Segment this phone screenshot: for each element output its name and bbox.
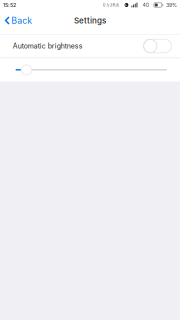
button[interactable]: Automatic brightness: [143, 39, 171, 53]
staticText: Automatic brightness: [13, 42, 83, 50]
staticText: Settings: [74, 16, 106, 25]
button[interactable]: Brightness: [0, 63, 180, 77]
staticText: 4G: [142, 2, 149, 8]
staticText: 15:52: [3, 2, 16, 8]
button[interactable]: Automatic brightness: [0, 34, 180, 57]
staticText: 0.53K/s: [103, 2, 119, 7]
staticText: 39%: [166, 2, 177, 8]
button[interactable]: Back: [0, 10, 36, 31]
staticText: Back: [11, 15, 32, 26]
